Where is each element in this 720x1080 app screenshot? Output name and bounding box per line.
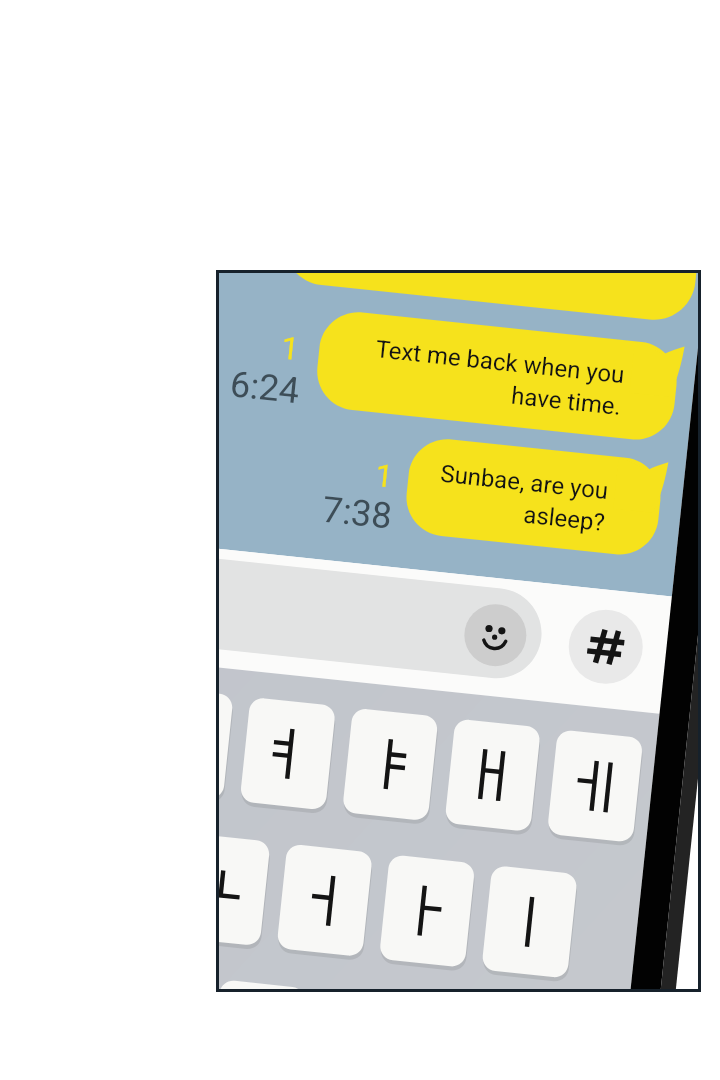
button[interactable]: Comic panel of a phone chat screen	[0, 0, 720, 1080]
